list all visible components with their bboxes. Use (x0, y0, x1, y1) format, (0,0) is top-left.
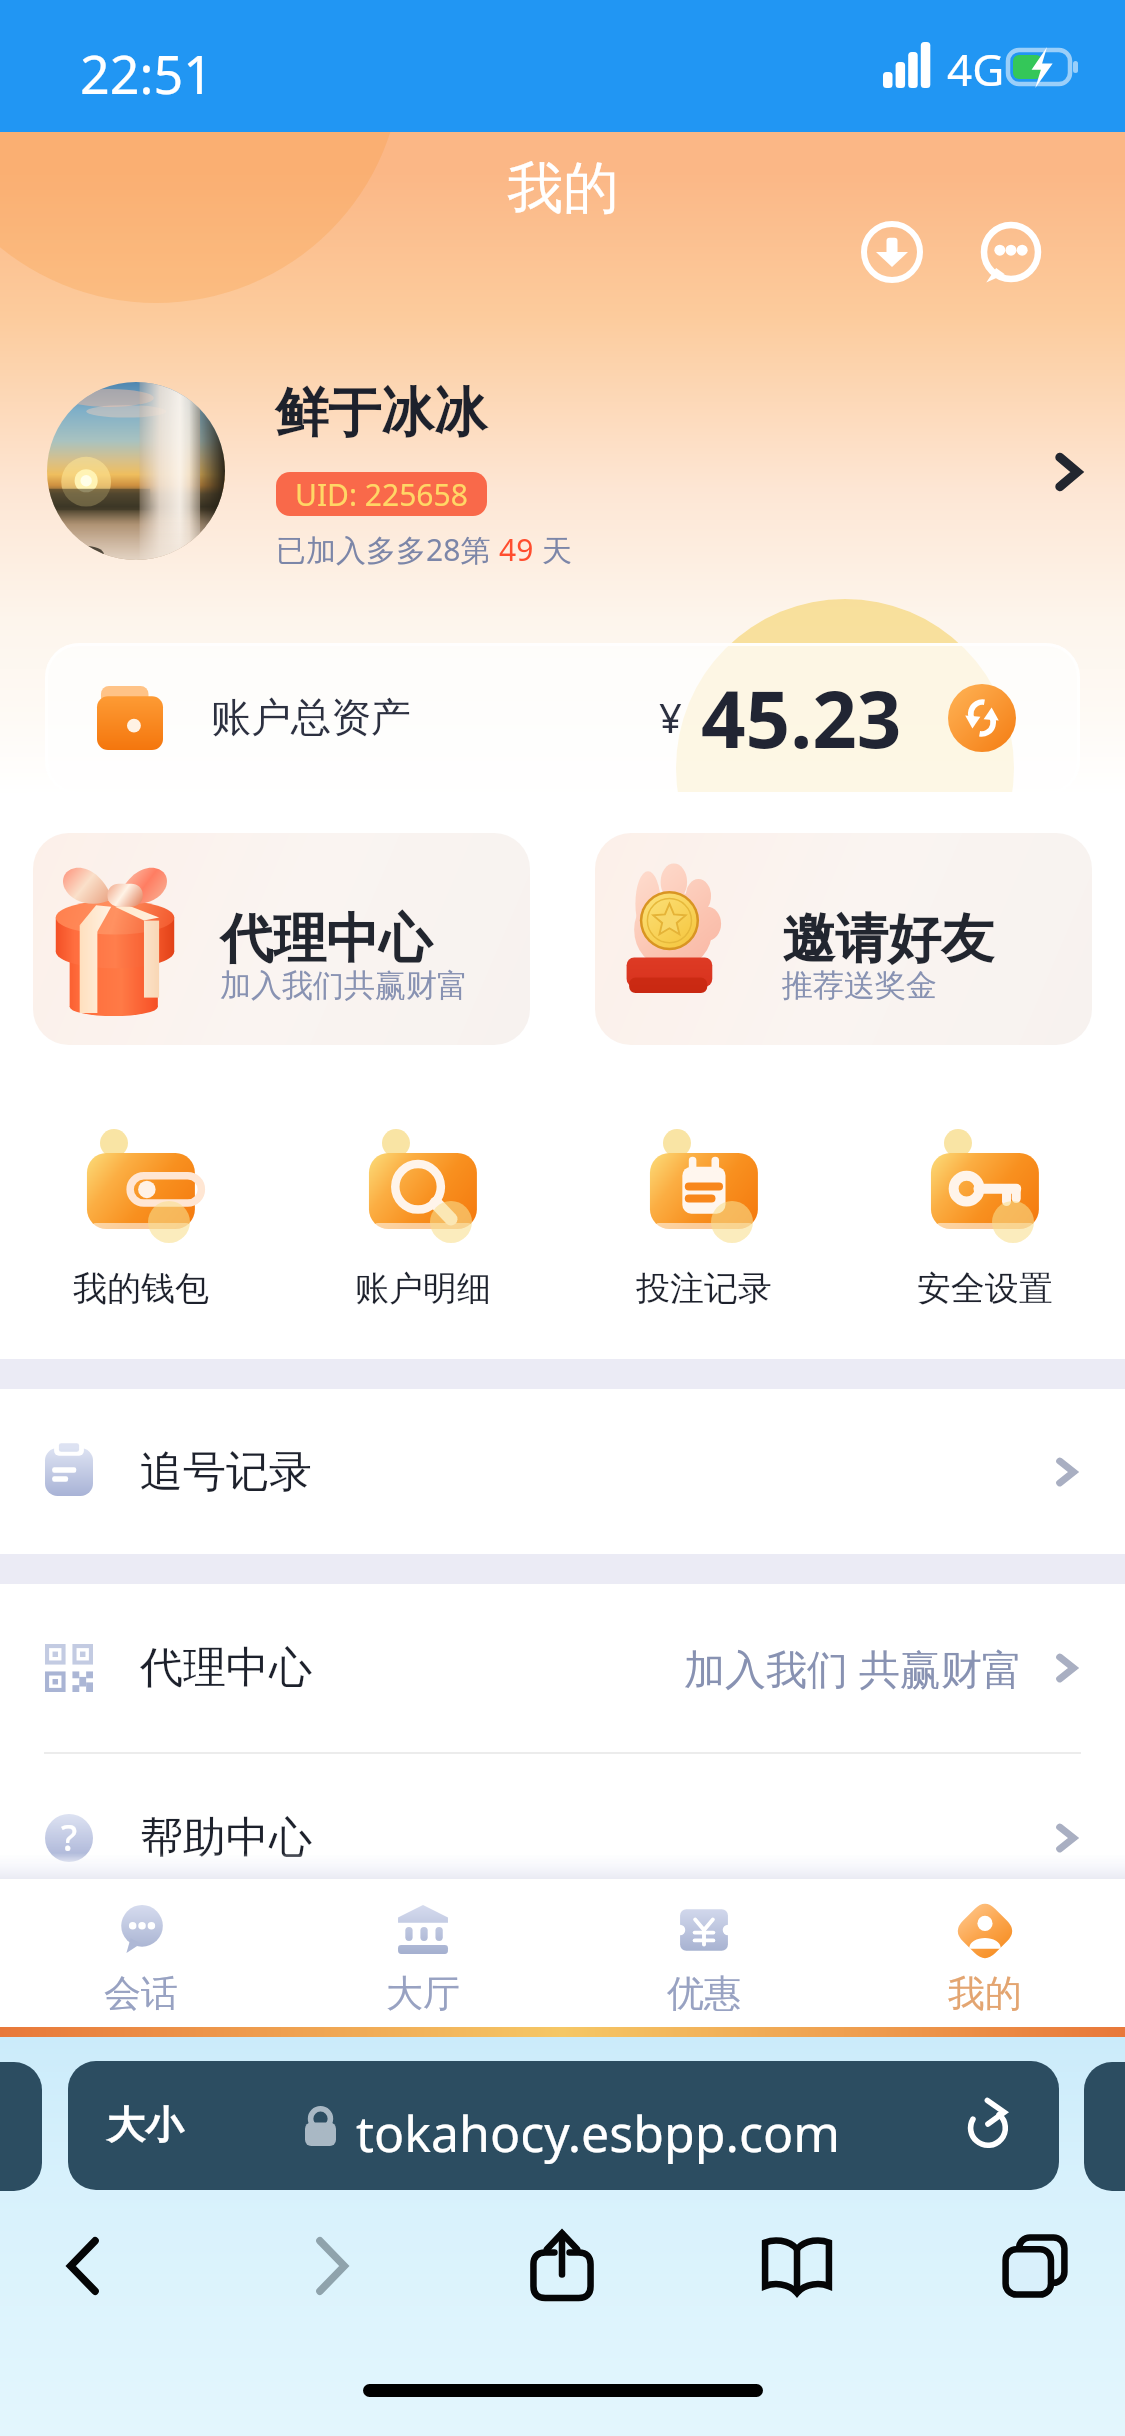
button[interactable]: 代理中心 (33, 833, 530, 1045)
button[interactable]: 账户总资产 (45, 643, 1080, 795)
staticText: 加入我们 共赢财富 (684, 1640, 1023, 1696)
staticText: 代理中心 (140, 1641, 312, 1695)
staticText: 大厅 (386, 1970, 460, 2017)
button[interactable]: 鲜于冰冰 (0, 377, 1125, 627)
button[interactable]: ? (0, 1754, 1125, 1922)
button[interactable]: Tabs (980, 2211, 1090, 2321)
button[interactable]: 优惠 (563, 1879, 844, 2027)
staticText: 代理中心 (220, 906, 432, 973)
button[interactable]: 投注记录 (563, 1127, 844, 1310)
button[interactable]: Bookmarks (742, 2211, 852, 2321)
staticText: 22:51 (80, 38, 213, 109)
staticText: ¥ (659, 690, 682, 744)
staticText: 会话 (104, 1970, 178, 2017)
staticText: UID: 225658 (295, 474, 468, 515)
button[interactable]: 大小 (68, 2061, 1059, 2190)
button[interactable]: Download (858, 218, 926, 286)
staticText: 鲜于冰冰 (275, 380, 487, 447)
staticText: 安全设置 (917, 1267, 1053, 1310)
button[interactable]: 追号记录 (0, 1389, 1125, 1554)
staticText: ? (61, 1813, 78, 1861)
staticText: 优惠 (667, 1970, 741, 2017)
button[interactable]: 我的 (844, 1879, 1125, 2027)
button[interactable]: 我的钱包 (0, 1127, 282, 1310)
button[interactable]: Share (507, 2211, 617, 2321)
button[interactable]: 大厅 (282, 1879, 563, 2027)
staticText: 投注记录 (636, 1267, 772, 1310)
button[interactable]: Messages (977, 218, 1045, 286)
staticText: 我的 (507, 153, 619, 224)
staticText: 已加入多多28第 (276, 529, 499, 570)
staticText: 邀请好友 (782, 906, 994, 973)
button[interactable]: Reload (965, 2096, 1021, 2152)
staticText: 45.23 (701, 665, 902, 771)
button[interactable]: Refresh balance (948, 684, 1016, 752)
staticText: 49 (499, 529, 534, 570)
staticText: 账户明细 (355, 1267, 491, 1310)
staticText: 帮助中心 (140, 1811, 312, 1865)
button[interactable]: 会话 (0, 1879, 282, 2027)
button[interactable]: 邀请好友 (595, 833, 1092, 1045)
staticText: 推荐送奖金 (782, 966, 937, 1005)
button[interactable]: 代理中心 (0, 1584, 1125, 1752)
button[interactable]: 账户明细 (282, 1127, 563, 1310)
staticText: 加入我们共赢财富 (220, 966, 468, 1005)
staticText: 追号记录 (140, 1445, 312, 1499)
staticText: 我的钱包 (73, 1267, 209, 1310)
staticText: 我的 (948, 1970, 1022, 2017)
button[interactable]: Forward (275, 2211, 385, 2321)
staticText: 4G (947, 39, 1005, 99)
staticText: 大小 (107, 2101, 183, 2149)
button[interactable]: Back (30, 2211, 140, 2321)
button[interactable]: 安全设置 (844, 1127, 1125, 1310)
staticText: 天 (534, 529, 572, 570)
staticText: tokahocy.esbpp.com (356, 2099, 840, 2167)
staticText: 账户总资产 (211, 692, 411, 742)
